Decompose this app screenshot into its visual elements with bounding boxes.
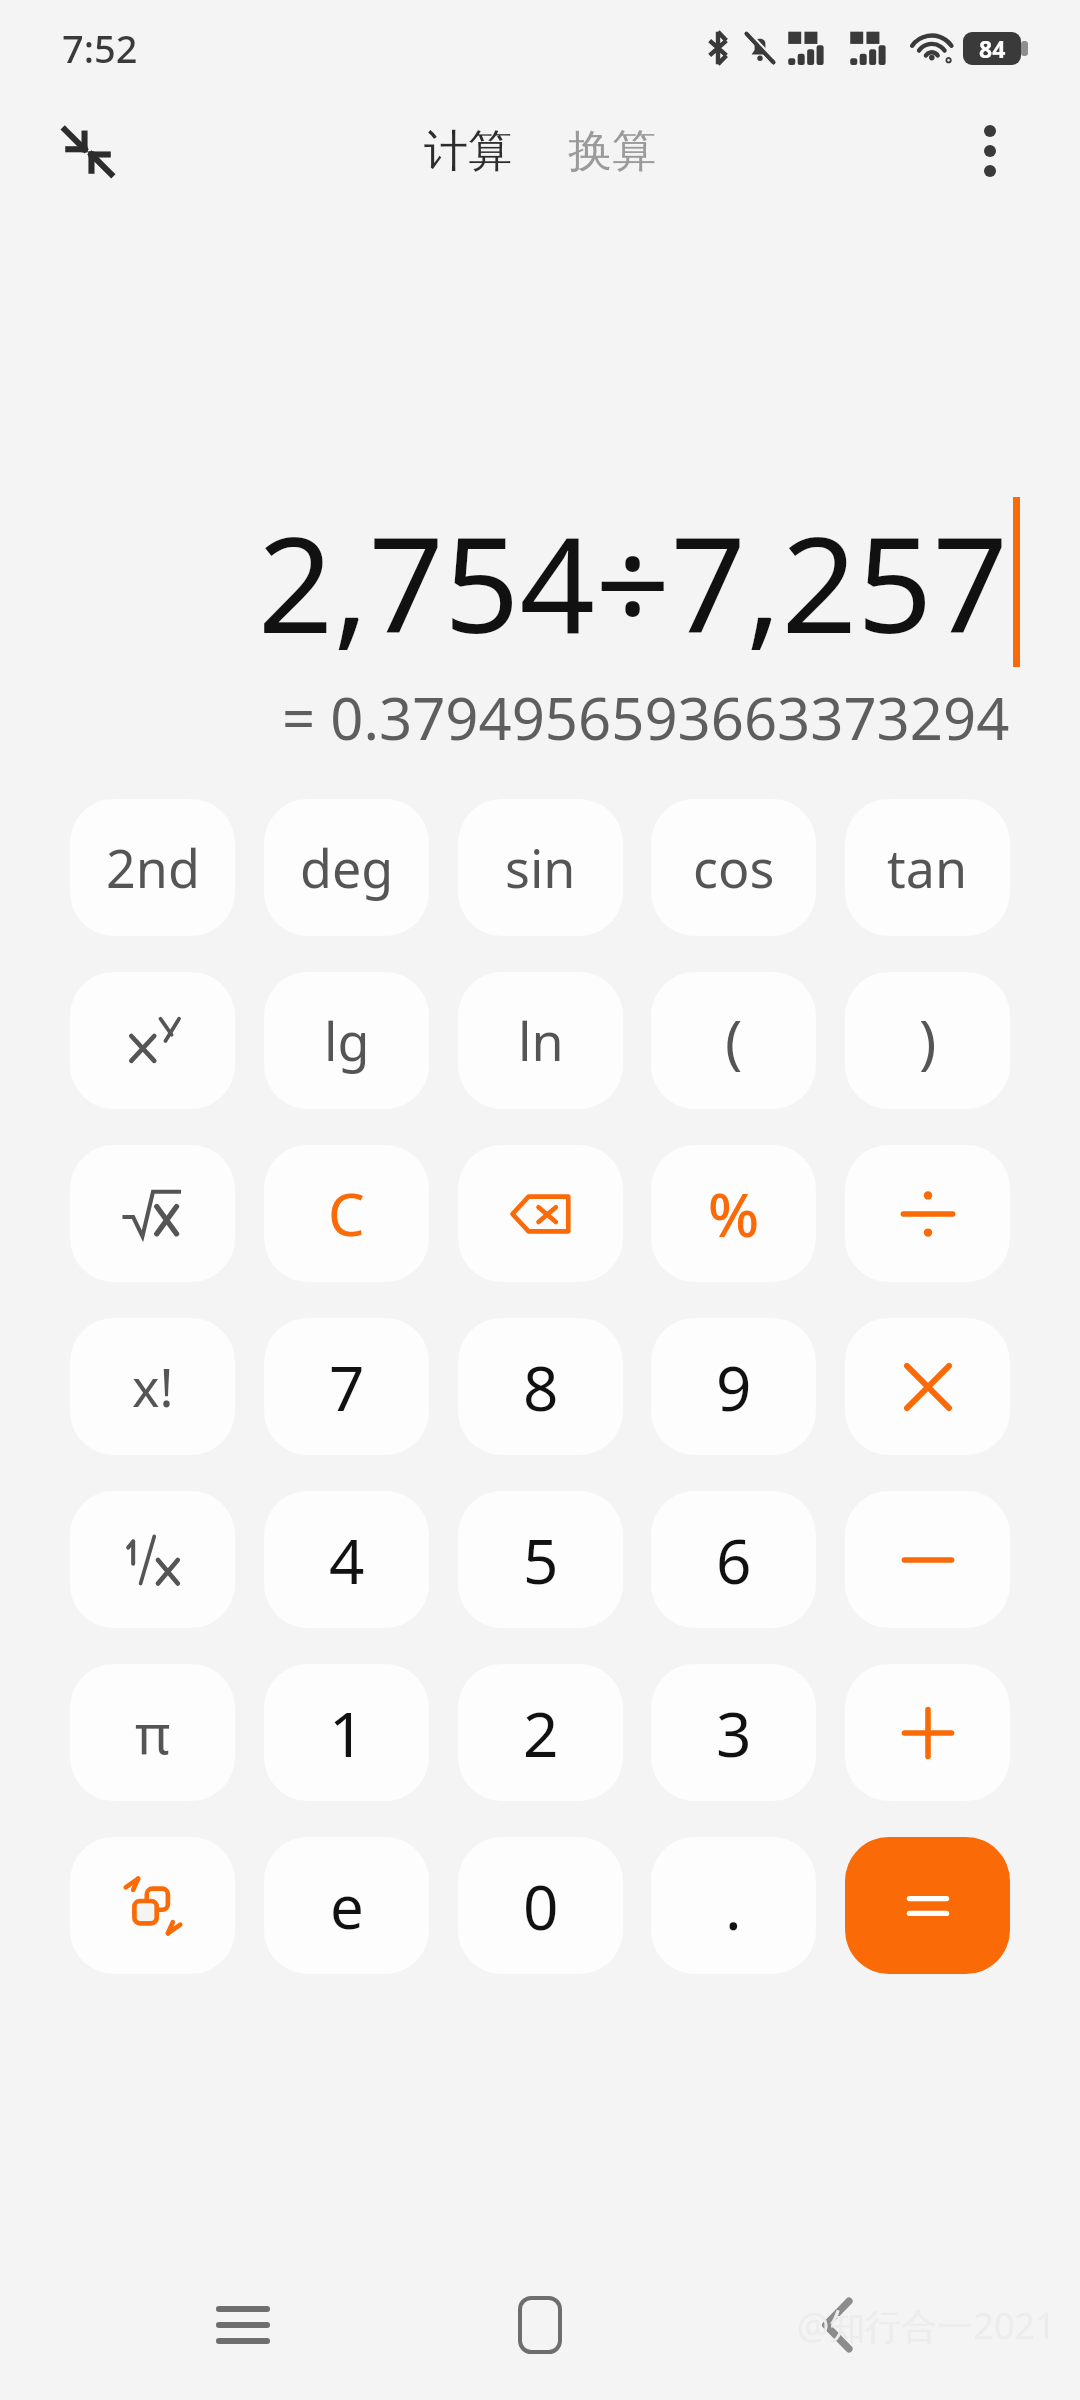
staticText: 2,754÷7,257 — [257, 492, 1008, 672]
staticText: sin — [505, 832, 576, 903]
button[interactable]: Swap — [70, 1837, 235, 1974]
staticText: 6 — [716, 1518, 752, 1602]
staticText: 0 — [523, 1864, 559, 1948]
button[interactable]: Square root — [70, 1145, 235, 1282]
button[interactable]: tan — [845, 799, 1010, 936]
staticText: e — [330, 1865, 364, 1947]
staticText: C — [328, 1174, 365, 1253]
button[interactable]: cos — [651, 799, 816, 936]
staticText: 5 — [523, 1518, 559, 1602]
button[interactable]: deg — [264, 799, 429, 936]
staticText: deg — [300, 832, 394, 903]
staticText: tan — [887, 832, 968, 903]
staticText: 1 — [329, 1691, 365, 1775]
staticText: 2nd — [106, 832, 200, 903]
staticText: 换算 — [568, 124, 656, 179]
staticText: 计算 — [424, 124, 512, 179]
button[interactable]: 8 — [458, 1318, 623, 1455]
button[interactable]: 7 — [264, 1318, 429, 1455]
staticText: x! — [132, 1351, 174, 1422]
button[interactable]: 3 — [651, 1664, 816, 1801]
staticText: 9 — [716, 1345, 752, 1429]
staticText: @知行合一2021 — [797, 2301, 1056, 2350]
staticText: lg — [324, 1005, 370, 1076]
staticText: 7 — [329, 1345, 365, 1429]
staticText: 4 — [329, 1518, 365, 1602]
button[interactable]: e — [264, 1837, 429, 1974]
button[interactable]: 2 — [458, 1664, 623, 1801]
button[interactable]: More options — [948, 109, 1032, 193]
button[interactable]: . — [651, 1837, 816, 1974]
button[interactable]: Collapse — [46, 109, 130, 193]
staticText: 8 — [523, 1345, 559, 1429]
staticText: cos — [693, 832, 775, 903]
button[interactable]: 2nd — [70, 799, 235, 936]
button[interactable]: 6 — [651, 1491, 816, 1628]
button[interactable]: Home — [485, 2270, 595, 2380]
button[interactable]: ) — [845, 972, 1010, 1109]
button[interactable]: Add — [845, 1664, 1010, 1801]
button[interactable]: 0 — [458, 1837, 623, 1974]
button[interactable]: 换算 — [558, 116, 666, 187]
button[interactable]: One over x — [70, 1491, 235, 1628]
button[interactable]: Backspace — [458, 1145, 623, 1282]
button[interactable]: Recents — [188, 2270, 298, 2380]
button[interactable]: Equals — [845, 1837, 1010, 1974]
staticText: . — [725, 1864, 742, 1948]
button[interactable]: x! — [70, 1318, 235, 1455]
staticText: = 0.3794956593663373294 — [282, 678, 1010, 757]
button[interactable]: π — [70, 1664, 235, 1801]
button[interactable]: 5 — [458, 1491, 623, 1628]
staticText: ln — [518, 1005, 564, 1076]
button[interactable]: lg — [264, 972, 429, 1109]
button[interactable]: sin — [458, 799, 623, 936]
button[interactable]: ( — [651, 972, 816, 1109]
staticText: % — [708, 1173, 760, 1255]
staticText: 2 — [523, 1691, 559, 1775]
staticText: 84 — [979, 33, 1006, 64]
button[interactable]: x to the power y — [70, 972, 235, 1109]
button[interactable]: ln — [458, 972, 623, 1109]
button[interactable]: 1 — [264, 1664, 429, 1801]
button[interactable]: 计算 — [414, 116, 522, 187]
button[interactable]: 4 — [264, 1491, 429, 1628]
button[interactable]: Multiply — [845, 1318, 1010, 1455]
button[interactable]: % — [651, 1145, 816, 1282]
staticText: ( — [725, 1001, 743, 1080]
button[interactable]: Divide — [845, 1145, 1010, 1282]
button[interactable]: Subtract — [845, 1491, 1010, 1628]
button[interactable]: Back — [783, 2270, 893, 2380]
staticText: 3 — [716, 1691, 752, 1775]
staticText: π — [135, 1696, 171, 1770]
staticText: ) — [919, 1001, 937, 1080]
button[interactable]: C — [264, 1145, 429, 1282]
staticText: 7:52 — [62, 22, 138, 74]
button[interactable]: 9 — [651, 1318, 816, 1455]
